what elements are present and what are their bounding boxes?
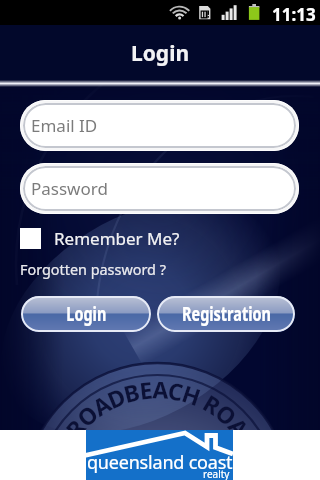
staticText: Login: [131, 39, 190, 68]
staticText: 11:13: [272, 3, 316, 26]
button[interactable]: Forgotten password ?: [20, 260, 166, 280]
staticText: Password: [31, 177, 108, 200]
button[interactable]: Remember Me?: [20, 227, 180, 250]
button[interactable]: Registration: [157, 296, 295, 332]
staticText: Login: [66, 301, 107, 327]
staticText: Email ID: [31, 114, 98, 137]
button[interactable]: Password: [23, 166, 296, 211]
staticText: Remember Me?: [54, 227, 180, 250]
button[interactable]: Login: [21, 296, 151, 332]
staticText: Registration: [182, 301, 271, 327]
staticText: Forgotten password ?: [20, 260, 166, 280]
staticText: realty: [203, 467, 230, 480]
staticText: queensland coast: [87, 450, 233, 475]
button[interactable]: Email ID: [23, 103, 296, 148]
